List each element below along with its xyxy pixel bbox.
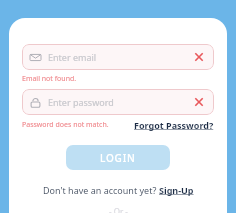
- button[interactable]: Clear: [192, 50, 206, 64]
- staticText: Don't have an account yet?: [43, 184, 159, 196]
- staticText: Password does not match.: [22, 120, 109, 130]
- button[interactable]: Email: [22, 44, 214, 70]
- staticText: Forgot Password?: [134, 119, 214, 131]
- staticText: Enter password: [48, 96, 114, 108]
- staticText: - Or -: [109, 206, 128, 213]
- button[interactable]: LOGIN: [66, 145, 170, 170]
- other: Email: [30, 52, 41, 63]
- button[interactable]: Sign-Up: [159, 184, 194, 196]
- button[interactable]: Clear: [192, 95, 206, 109]
- staticText: Email not found.: [22, 74, 77, 84]
- button[interactable]: Password: [22, 89, 214, 115]
- staticText: Enter email: [48, 51, 97, 63]
- staticText: LOGIN: [100, 151, 136, 165]
- staticText: Sign-Up: [159, 184, 194, 196]
- other: Password: [30, 97, 41, 108]
- button[interactable]: Forgot Password?: [134, 119, 214, 131]
